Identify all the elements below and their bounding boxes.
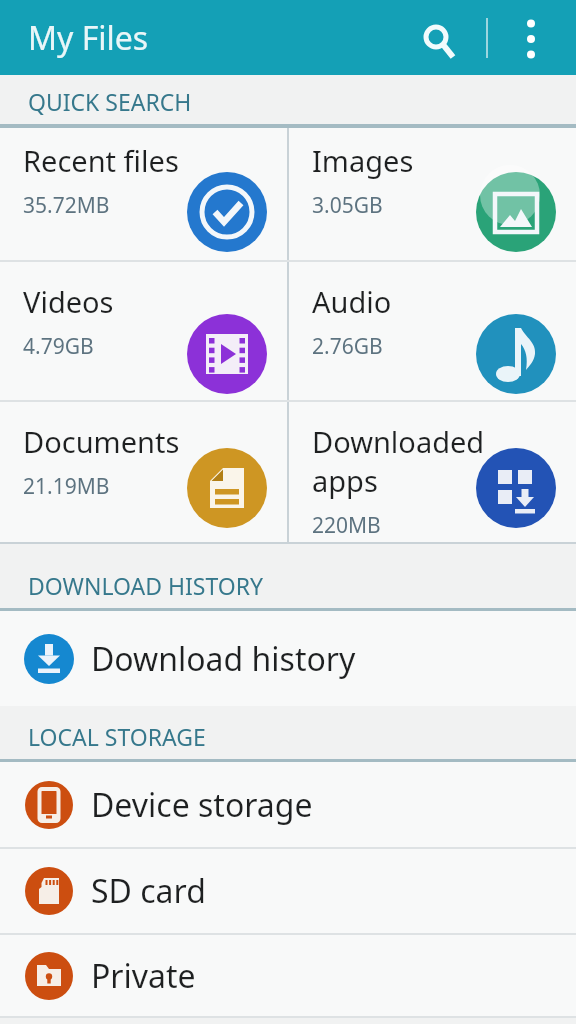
button[interactable]	[409, 11, 463, 65]
staticText: Videos	[23, 282, 114, 321]
button[interactable]: Private	[0, 935, 576, 1016]
staticText: 220MB	[312, 511, 381, 540]
staticText: Images	[312, 141, 414, 180]
button[interactable]: Downloaded	[289, 402, 576, 542]
staticText: Recent files	[23, 141, 179, 180]
staticText: SD card	[91, 869, 206, 913]
staticText: 21.19MB	[23, 472, 110, 501]
staticText: LOCAL STORAGE	[28, 721, 206, 752]
staticText: Download history	[91, 637, 356, 681]
button[interactable]: Audio	[289, 262, 576, 400]
button[interactable]	[506, 13, 556, 63]
staticText: Audio	[312, 282, 392, 321]
button[interactable]: Recent files	[0, 128, 287, 260]
staticText: 4.79GB	[23, 332, 94, 361]
button[interactable]: SD card	[0, 849, 576, 933]
staticText: 3.05GB	[312, 191, 383, 220]
staticText: Documents	[23, 422, 180, 461]
button[interactable]: Download history	[0, 611, 576, 706]
button[interactable]: Device storage	[0, 762, 576, 847]
staticText: My Files	[28, 16, 149, 60]
staticText: 2.76GB	[312, 332, 383, 361]
staticText: Downloaded	[312, 422, 485, 461]
button[interactable]: Images	[289, 128, 576, 260]
staticText: 35.72MB	[23, 191, 110, 220]
staticText: apps	[312, 461, 378, 500]
staticText: DOWNLOAD HISTORY	[28, 570, 264, 601]
staticText: Private	[91, 954, 196, 998]
staticText: QUICK SEARCH	[28, 86, 192, 117]
button[interactable]: Videos	[0, 262, 287, 400]
button[interactable]: Documents	[0, 402, 287, 542]
staticText: Device storage	[91, 783, 313, 827]
